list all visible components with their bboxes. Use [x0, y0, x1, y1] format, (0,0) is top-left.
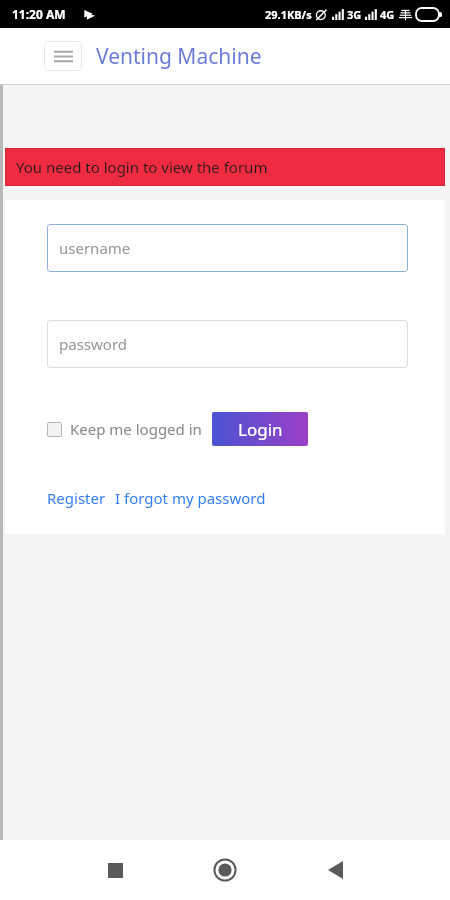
button[interactable]: Open navigation menu — [44, 41, 82, 71]
staticText: Login — [238, 418, 283, 441]
staticText: 3G — [347, 7, 362, 22]
staticText: You need to login to view the forum — [16, 157, 268, 177]
staticText: 11:20 AM — [12, 6, 66, 22]
button[interactable]: Keep me logged in — [47, 419, 202, 439]
button[interactable]: password — [47, 320, 408, 368]
button[interactable]: Recent apps — [60, 846, 170, 894]
button[interactable]: Login — [212, 412, 308, 446]
staticText: username — [59, 238, 131, 258]
staticText: password — [59, 334, 127, 354]
staticText: I forgot my password — [115, 488, 266, 508]
button[interactable]: I forgot my password — [115, 488, 266, 508]
button[interactable]: Register — [47, 488, 106, 508]
button[interactable]: Back — [280, 846, 390, 894]
staticText: 4G — [380, 7, 395, 22]
staticText: Keep me logged in — [70, 419, 202, 439]
staticText: Venting Machine — [96, 42, 262, 71]
staticText: 29.1KB/s — [265, 7, 312, 22]
button[interactable]: Home — [170, 846, 280, 894]
button[interactable]: username — [47, 224, 408, 272]
staticText: Register — [47, 488, 106, 508]
